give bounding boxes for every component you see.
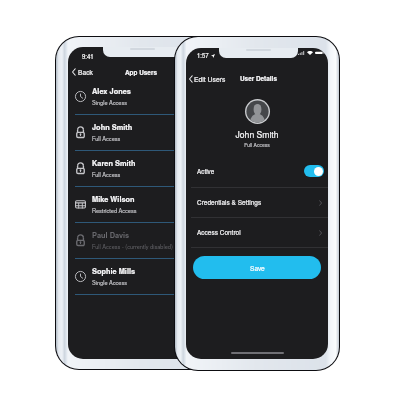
staticText: Single Access — [92, 99, 128, 107]
staticText: Full Access — [92, 171, 121, 179]
staticText: Credentials & Settings — [197, 198, 262, 207]
staticText: Single Access — [92, 279, 128, 287]
staticText: Paul Davis — [92, 230, 130, 241]
staticText: Back — [78, 67, 93, 77]
staticText: Restricted Access — [92, 207, 137, 215]
button[interactable]: Access Control — [197, 218, 322, 247]
staticText: Edit Users — [194, 74, 226, 84]
staticText: Full Access — [186, 141, 328, 148]
button[interactable]: John Smith — [68, 115, 215, 151]
staticText: Active — [197, 167, 215, 176]
staticText: 9:41 — [82, 52, 94, 61]
staticText: Full Access — [92, 135, 121, 143]
button[interactable]: Active — [197, 155, 324, 187]
button[interactable]: Active toggle — [304, 165, 324, 177]
staticText: Sophie Mills — [92, 266, 136, 277]
button[interactable]: Back — [72, 67, 93, 77]
staticText: Mike Wilson — [92, 194, 135, 205]
staticText: John Smith — [92, 122, 133, 133]
staticText: 1:57 — [197, 51, 209, 60]
staticText: Alex Jones — [92, 86, 131, 97]
button[interactable]: Edit Users — [189, 74, 226, 84]
staticText: Karen Smith — [92, 158, 136, 169]
staticText: John Smith — [186, 128, 328, 140]
staticText: Save — [250, 263, 265, 272]
button[interactable]: Karen Smith — [68, 151, 215, 187]
button[interactable]: Mike Wilson — [68, 187, 215, 223]
button[interactable]: Paul Davis — [68, 223, 215, 259]
button[interactable]: Sophie Mills — [68, 259, 215, 295]
staticText: User Details — [240, 74, 277, 83]
staticText: Full Access - (currently disabled) — [92, 243, 173, 251]
button[interactable]: Save — [193, 256, 321, 279]
button[interactable]: Credentials & Settings — [197, 188, 322, 217]
staticText: Access Control — [197, 228, 241, 237]
staticText: App Users — [125, 68, 157, 77]
button[interactable]: Alex Jones — [68, 79, 215, 115]
